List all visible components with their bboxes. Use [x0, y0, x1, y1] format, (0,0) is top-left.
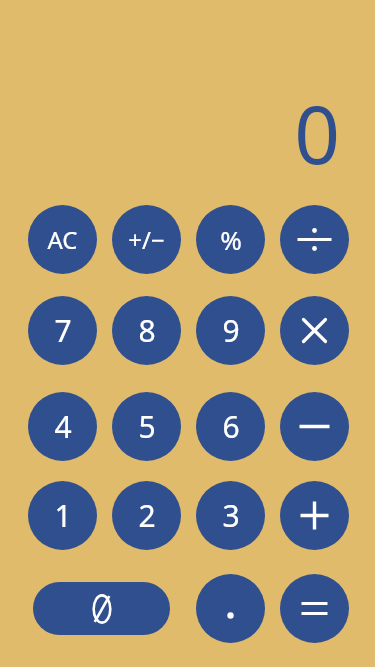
staticText: 4 [54, 406, 72, 447]
button[interactable]: 8 [112, 296, 181, 365]
staticText: 5 [138, 406, 156, 447]
button[interactable]: 4 [28, 392, 97, 461]
staticText: +/− [128, 223, 165, 256]
button[interactable]: AC [28, 205, 97, 274]
button[interactable]: 5 [112, 392, 181, 461]
button[interactable]: % [196, 205, 265, 274]
button[interactable]: 1 [28, 481, 97, 550]
button[interactable]: Minus [280, 392, 349, 461]
button[interactable] [33, 582, 170, 635]
button[interactable]: 3 [196, 481, 265, 550]
staticText: 8 [138, 310, 156, 351]
staticText: AC [47, 223, 78, 256]
button[interactable]: Multiply [280, 296, 349, 365]
button[interactable]: 9 [196, 296, 265, 365]
button[interactable]: Divide [280, 205, 349, 274]
button[interactable]: 7 [28, 296, 97, 365]
button[interactable]: +/− [112, 205, 181, 274]
staticText: 1 [54, 495, 72, 536]
button[interactable]: 2 [112, 481, 181, 550]
button[interactable]: Plus [280, 481, 349, 550]
staticText: 9 [222, 310, 240, 351]
staticText: 2 [138, 495, 156, 536]
staticText: 6 [222, 406, 240, 447]
staticText: % [220, 222, 242, 257]
button[interactable]: Decimal point [196, 574, 265, 643]
staticText: 3 [222, 495, 240, 536]
button[interactable]: 6 [196, 392, 265, 461]
button[interactable]: Equals [280, 574, 349, 643]
staticText: 7 [54, 310, 72, 351]
staticText: 0 [294, 78, 340, 178]
